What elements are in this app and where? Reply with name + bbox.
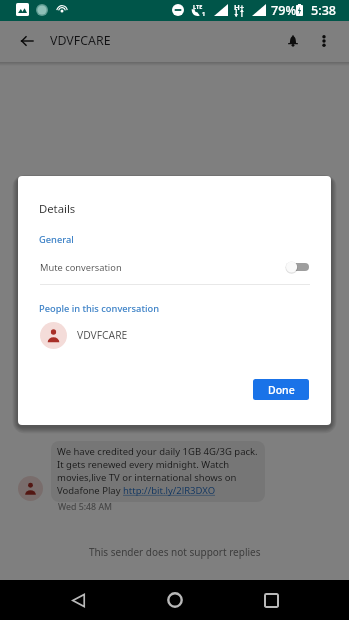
- staticText: movies,live TV or international shows on: [57, 471, 237, 484]
- staticText: Wed 5:48 AM: [58, 501, 113, 513]
- staticText: http://bit.ly/2lR3DXO: [123, 484, 216, 497]
- staticText: 5:38: [311, 2, 337, 19]
- button[interactable]: Back: [13, 27, 41, 55]
- staticText: People in this conversation: [39, 302, 159, 315]
- button[interactable]: Recent apps: [251, 580, 291, 620]
- staticText: This sender does not support replies: [89, 545, 261, 559]
- staticText: We have credited your daily 1GB 4G/3G pa…: [57, 445, 258, 458]
- staticText: VDVFCARE: [50, 32, 111, 49]
- button[interactable]: Done: [253, 379, 309, 400]
- staticText: General: [39, 233, 74, 246]
- staticText: Done: [268, 383, 295, 397]
- staticText: Details: [39, 201, 76, 216]
- button[interactable]: VDVFCARE: [18, 319, 331, 351]
- button[interactable]: More options: [310, 27, 337, 54]
- button[interactable]: Notifications: [279, 27, 306, 54]
- staticText: Mute conversation: [40, 261, 122, 274]
- staticText: It gets renewed every midnight. Watch: [57, 458, 230, 471]
- staticText: 79%: [271, 2, 297, 19]
- button[interactable]: Home: [155, 580, 195, 620]
- staticText: LTE: [193, 3, 203, 11]
- staticText: 1: [202, 10, 206, 18]
- button[interactable]: Mute conversation: [18, 255, 331, 279]
- button[interactable]: Back: [58, 580, 98, 620]
- staticText: H+: [234, 2, 245, 12]
- staticText: VDVFCARE: [77, 328, 128, 342]
- staticText: Vodafone Play: [57, 484, 123, 497]
